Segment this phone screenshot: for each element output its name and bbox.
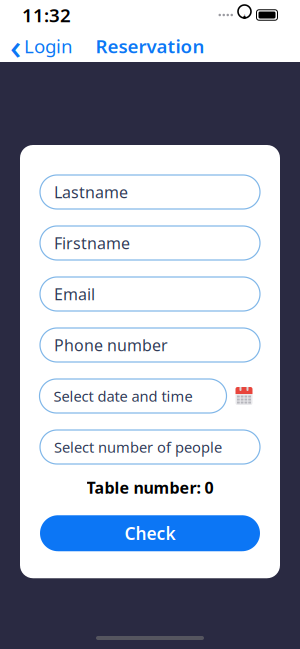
- button[interactable]: ‹: [0, 30, 83, 62]
- staticText: Firstname: [54, 232, 130, 254]
- button[interactable]: Lastname: [40, 175, 260, 209]
- button[interactable]: Select date and time: [40, 379, 260, 413]
- staticText: Check: [124, 522, 175, 545]
- staticText: Reservation: [95, 34, 204, 58]
- staticText: Table number: 0: [86, 477, 213, 498]
- staticText: Lastname: [54, 181, 128, 203]
- button[interactable]: Select number of people: [40, 430, 260, 464]
- button[interactable]: Firstname: [40, 226, 260, 260]
- button[interactable]: Email: [40, 277, 260, 311]
- staticText: ●: [244, 14, 245, 16]
- staticText: Select number of people: [54, 437, 222, 457]
- staticText: Select date and time: [53, 386, 192, 406]
- staticText: ‹: [10, 23, 21, 69]
- button[interactable]: Check: [40, 515, 260, 551]
- staticText: Phone number: [54, 334, 168, 356]
- staticText: 11:32: [22, 3, 71, 27]
- button[interactable]: Phone number: [40, 328, 260, 362]
- staticText: Email: [54, 283, 95, 305]
- staticText: Login: [24, 34, 73, 58]
